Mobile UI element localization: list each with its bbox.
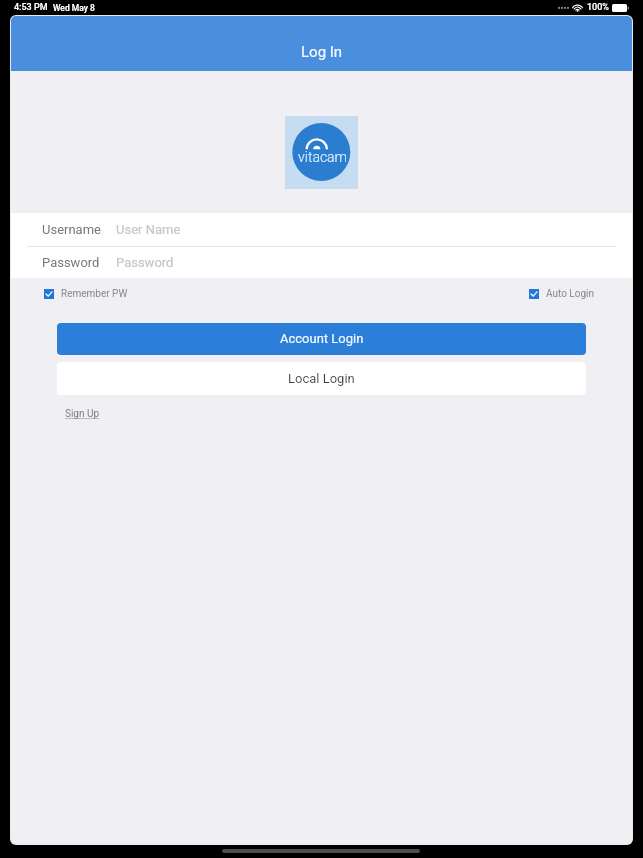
button[interactable]: Account Login bbox=[57, 323, 586, 355]
button[interactable]: Password bbox=[11, 247, 632, 278]
button[interactable]: Sign Up bbox=[60, 406, 105, 422]
staticText: Account Login bbox=[280, 331, 364, 346]
staticText: 4:53 PM bbox=[14, 2, 48, 13]
other: Battery 100 percent bbox=[612, 4, 629, 12]
staticText: Wed May 8 bbox=[53, 3, 95, 13]
button[interactable]: Local Login bbox=[57, 362, 586, 395]
staticText: Password bbox=[116, 255, 174, 270]
button[interactable]: Auto Login bbox=[529, 288, 594, 300]
other: Cellular signal bbox=[557, 3, 569, 12]
other: Wi-Fi bbox=[572, 3, 583, 12]
staticText: Auto Login bbox=[546, 288, 594, 300]
button[interactable]: Username bbox=[11, 213, 632, 246]
staticText: vitacam bbox=[298, 149, 348, 165]
staticText: Local Login bbox=[288, 371, 355, 386]
button[interactable]: Remember PW bbox=[44, 288, 128, 300]
staticText: 100% bbox=[587, 2, 609, 13]
staticText: Log In bbox=[301, 43, 343, 61]
staticText: Password bbox=[42, 255, 100, 270]
staticText: Username bbox=[42, 222, 101, 237]
other: Vitacam logo bbox=[285, 116, 358, 189]
staticText: Sign Up bbox=[65, 408, 100, 420]
staticText: User Name bbox=[116, 222, 181, 237]
staticText: Remember PW bbox=[61, 288, 128, 300]
